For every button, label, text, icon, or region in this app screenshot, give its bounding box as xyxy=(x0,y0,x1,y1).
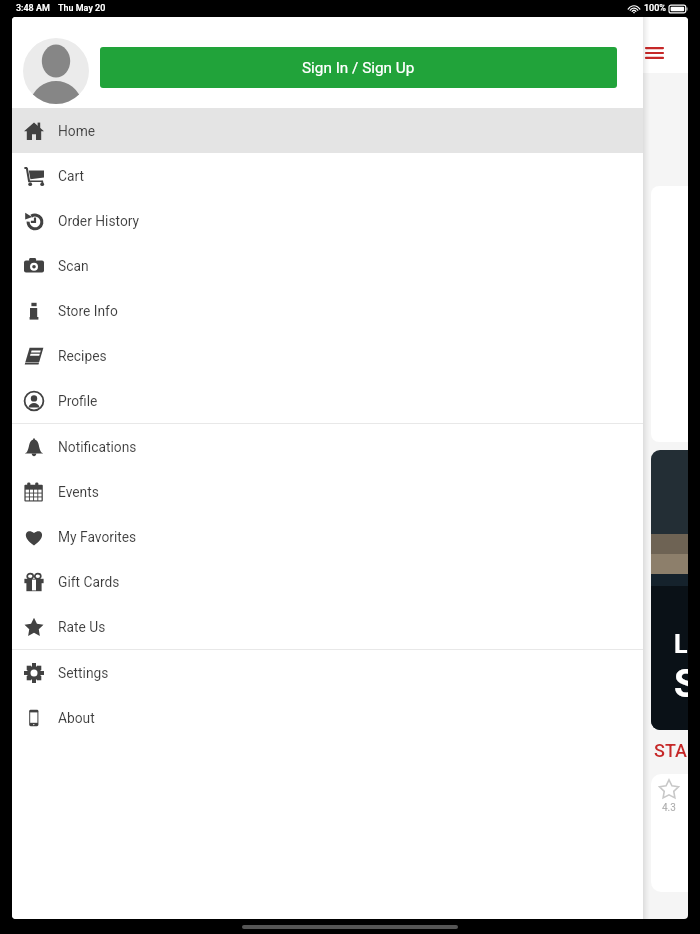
staticText: Cart xyxy=(58,168,85,184)
staticText: Sign In / Sign Up xyxy=(302,59,415,77)
staticText: Home xyxy=(58,123,96,139)
button[interactable]: Scan xyxy=(12,243,643,288)
button[interactable]: Recipes xyxy=(12,333,643,378)
button[interactable]: Home xyxy=(12,108,643,153)
staticText: Store Info xyxy=(58,303,118,319)
button[interactable]: Order History xyxy=(12,198,643,243)
staticText: STAR REWARDS xyxy=(654,740,688,761)
button[interactable]: Notifications xyxy=(12,424,643,469)
button[interactable]: Profile xyxy=(12,378,643,423)
staticText: Order History xyxy=(58,213,140,229)
button[interactable]: Events xyxy=(12,469,643,514)
staticText: Thu May 20 xyxy=(58,3,106,14)
button[interactable]: Sign In / Sign Up xyxy=(100,47,617,88)
button[interactable]: Rate Us xyxy=(12,604,643,649)
staticText: Rate Us xyxy=(58,619,106,635)
button[interactable]: Cart xyxy=(12,153,643,198)
staticText: Scan xyxy=(58,258,89,274)
staticText: 3:48 AM xyxy=(16,3,50,14)
staticText: SALE xyxy=(674,662,688,707)
staticText: Settings xyxy=(58,665,109,681)
staticText: 4.3 xyxy=(662,802,676,814)
button[interactable]: Open navigation menu xyxy=(639,38,669,68)
staticText: My Favorites xyxy=(58,529,137,545)
button[interactable]: About xyxy=(12,695,643,740)
button[interactable]: My Favorites xyxy=(12,514,643,559)
staticText: LIMITED xyxy=(674,630,688,659)
button[interactable]: Store Info xyxy=(12,288,643,333)
staticText: Recipes xyxy=(58,348,107,364)
button[interactable]: Settings xyxy=(12,650,643,695)
button[interactable]: Gift Cards xyxy=(12,559,643,604)
staticText: Events xyxy=(58,484,99,500)
staticText: Notifications xyxy=(58,439,137,455)
staticText: Gift Cards xyxy=(58,574,120,590)
staticText: About xyxy=(58,710,95,726)
staticText: Profile xyxy=(58,393,98,409)
staticText: 100% xyxy=(644,3,666,14)
